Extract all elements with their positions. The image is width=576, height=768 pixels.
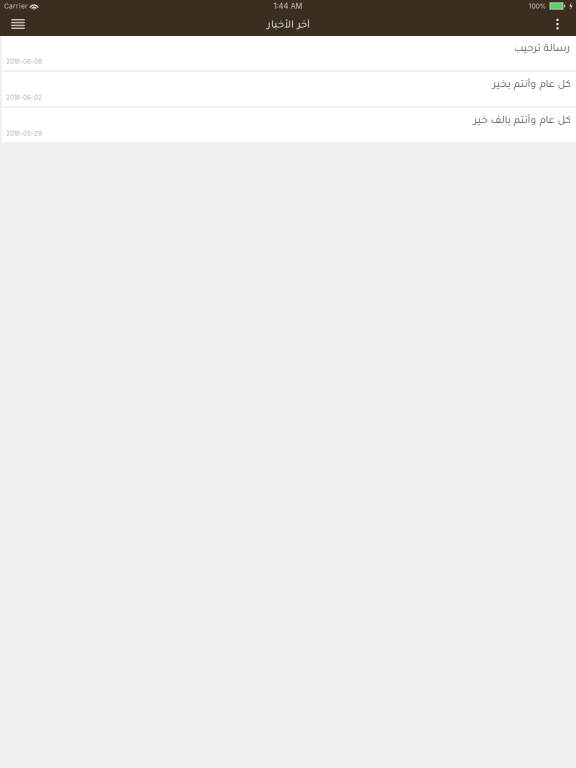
button[interactable]: More options (539, 12, 576, 36)
button[interactable]: كل عام وأنتم بخير (2, 72, 576, 106)
staticText: Carrier (4, 2, 28, 10)
staticText: 2018-06-08 (6, 58, 42, 65)
staticText: كل عام وأنتم بخير (492, 80, 570, 91)
staticText: كل عام وأنتم بالف خير (473, 116, 570, 127)
staticText: 100% (528, 2, 546, 10)
button[interactable]: كل عام وأنتم بالف خير (2, 108, 576, 142)
staticText: 1:44 AM (273, 1, 302, 10)
button[interactable]: Menu (0, 12, 36, 36)
staticText: آخر الأخبار (266, 20, 309, 32)
button[interactable]: رسالة ترحيب (2, 36, 576, 70)
staticText: 2018-05-29 (6, 130, 42, 137)
staticText: 2018-06-02 (6, 94, 42, 101)
staticText: رسالة ترحيب (513, 44, 570, 55)
